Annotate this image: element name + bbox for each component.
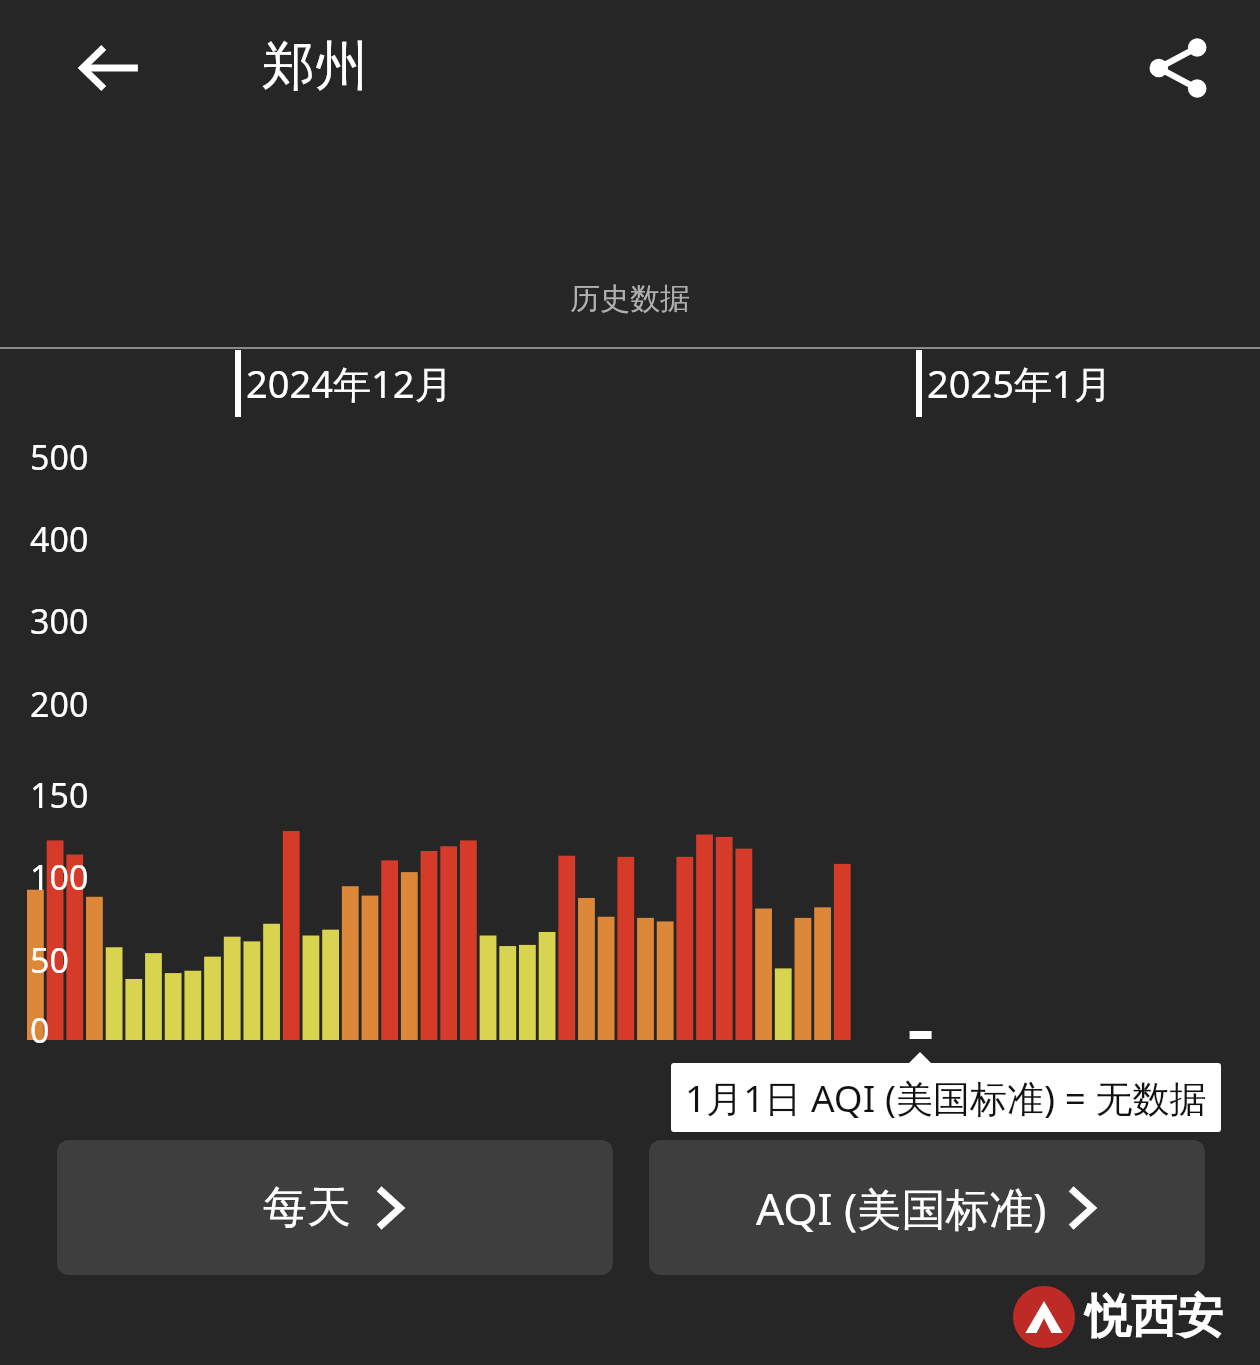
button[interactable]: Back: [62, 20, 158, 116]
staticText: 400: [30, 516, 89, 562]
staticText: 200: [30, 681, 89, 727]
staticText: 500: [30, 434, 89, 480]
staticText: 100: [30, 854, 89, 900]
staticText: 郑州: [262, 33, 368, 100]
button[interactable]: 每天: [57, 1140, 613, 1275]
staticText: 2025年1月: [927, 357, 1112, 409]
staticText: 悦西安: [1085, 1288, 1223, 1346]
button[interactable]: Share: [1130, 20, 1226, 116]
staticText: 1月1日 AQI (美国标准) = 无数据: [685, 1072, 1207, 1123]
staticText: 300: [30, 598, 89, 644]
staticText: 2024年12月: [246, 357, 453, 409]
button[interactable]: AQI (美国标准): [649, 1140, 1205, 1275]
staticText: 0: [30, 1007, 50, 1053]
staticText: 50: [30, 937, 69, 983]
staticText: AQI (美国标准): [756, 1178, 1047, 1238]
staticText: 历史数据: [570, 280, 690, 318]
staticText: 每天: [263, 1180, 351, 1235]
staticText: 150: [30, 772, 89, 818]
